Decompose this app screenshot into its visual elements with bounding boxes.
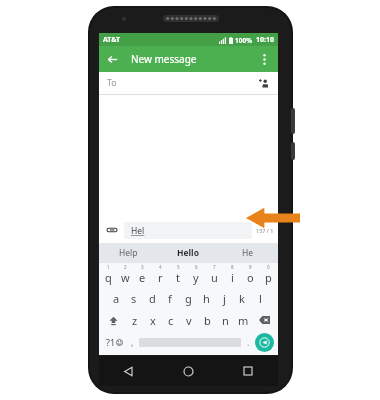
button[interactable]: ?1 [103,331,125,353]
staticText: h [203,291,210,306]
staticText: , [131,336,134,348]
staticText: 1 [107,264,110,270]
staticText: 10:10 [256,35,274,45]
button[interactable]: b [198,309,216,331]
button[interactable]: Back [99,46,125,72]
button[interactable]: g [180,288,196,308]
button[interactable]: z [126,309,144,331]
staticText: 8 [231,264,234,270]
button[interactable]: 6 [188,264,204,286]
staticText: e [139,270,146,285]
staticText: 100% [235,36,253,45]
staticText: z [132,313,138,328]
button[interactable]: m [234,309,252,331]
button[interactable]: f [162,288,178,308]
button[interactable]: Hel [124,222,252,239]
button[interactable]: 8 [224,264,240,286]
staticText: 0 [267,264,270,270]
staticText: w [121,270,130,285]
staticText: 2 [124,264,127,270]
staticText: New message [131,52,197,66]
staticText: 9 [249,264,252,270]
staticText: p [265,270,272,285]
button[interactable]: 0 [260,264,276,286]
staticText: i [231,270,234,285]
staticText: f [168,291,172,306]
staticText: 7 [213,264,216,270]
button[interactable]: More options [253,48,275,70]
staticText: ?1 [106,336,116,348]
staticText: t [176,270,180,285]
button[interactable]: 4 [152,264,168,286]
button[interactable]: Home [158,356,218,386]
staticText: v [186,313,192,328]
button[interactable]: l [252,288,268,308]
staticText: 4 [159,264,162,270]
staticText: l [259,291,262,306]
staticText: To [107,77,117,89]
staticText: Help [119,247,138,259]
staticText: 157 / 1 [256,227,274,234]
button[interactable]: j [216,288,232,308]
button[interactable]: s [126,288,142,308]
button[interactable]: Attach [104,222,120,238]
button[interactable]: d [144,288,160,308]
staticText: He [242,247,254,259]
staticText: Hel [131,225,145,237]
staticText: c [168,313,174,328]
staticText: y [193,270,199,285]
staticText: d [149,291,156,306]
staticText: 6 [195,264,198,270]
staticText: 5 [177,264,180,270]
staticText: j [223,291,226,306]
button[interactable]: 1 [101,264,116,286]
staticText: AT&T [103,35,121,45]
button[interactable]: Send [255,333,274,352]
staticText: s [131,291,137,306]
button[interactable]: h [198,288,214,308]
button[interactable]: Recents [218,356,278,386]
staticText: m [238,313,249,328]
staticText: Hello [177,247,199,259]
button[interactable]: Help [99,243,158,263]
button[interactable]: 9 [242,264,258,286]
button[interactable]: . [241,331,255,353]
staticText: o [247,270,254,285]
staticText: k [239,291,245,306]
button[interactable]: x [144,309,162,331]
button[interactable]: Back [99,356,158,386]
button[interactable]: Shift [100,309,126,331]
staticText: b [204,313,211,328]
button[interactable]: 3 [135,264,150,286]
button[interactable]: 5 [170,264,186,286]
button[interactable]: n [216,309,234,331]
staticText: g [185,291,192,306]
button[interactable]: , [125,331,139,353]
button[interactable]: To [99,72,278,94]
staticText: n [222,313,229,328]
staticText: 3 [141,264,144,270]
button[interactable]: 7 [206,264,222,286]
staticText: q [105,270,112,285]
staticText: a [113,291,120,306]
button[interactable]: v [180,309,198,331]
staticText: r [158,270,163,285]
button[interactable]: Backspace [252,309,277,331]
button[interactable]: a [109,288,124,308]
button[interactable]: 2 [118,264,133,286]
staticText: . [247,336,250,348]
button[interactable]: k [234,288,250,308]
staticText: u [211,270,218,285]
button[interactable]: He [218,243,278,263]
button[interactable]: Add contact [255,74,273,92]
staticText: x [150,313,156,328]
button[interactable]: Hello [158,243,218,263]
button[interactable]: c [162,309,180,331]
